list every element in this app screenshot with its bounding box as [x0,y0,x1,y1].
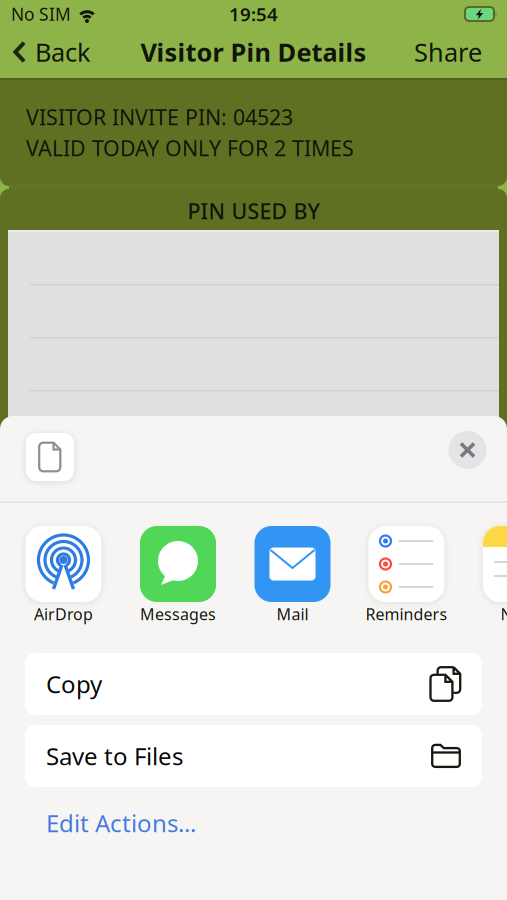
staticText: Mail [276,603,308,625]
staticText: Messages [140,603,216,625]
staticText: Visitor Pin Details [140,35,366,69]
staticText: Share [414,35,482,69]
staticText: No SIM [11,2,71,25]
button[interactable]: Mail [254,526,330,602]
staticText: Reminders [365,603,447,625]
staticText: Notes [500,603,507,625]
staticText: Edit Actions... [46,807,196,839]
button[interactable]: AirDrop [25,526,101,602]
button[interactable]: Reminders [368,526,444,602]
staticText: PIN USED BY [187,197,319,225]
button[interactable]: Copy [25,653,482,715]
button[interactable]: Messages [140,526,216,602]
staticText: AirDrop [34,603,93,625]
button[interactable]: Notes [483,526,507,602]
staticText: Back [35,35,91,69]
staticText: Save to Files [46,740,183,772]
button[interactable]: Close [448,431,486,469]
button[interactable]: Back [13,35,91,69]
button[interactable]: Edit Actions... [46,807,196,839]
staticText: Copy [46,668,102,700]
button[interactable]: Share [414,35,482,69]
staticText: VALID TODAY ONLY FOR 2 TIMES [26,134,354,162]
staticText: VISITOR INVITE PIN: 04523 [26,103,293,131]
button[interactable]: Save to Files [25,725,482,787]
staticText: 19:54 [229,2,278,26]
